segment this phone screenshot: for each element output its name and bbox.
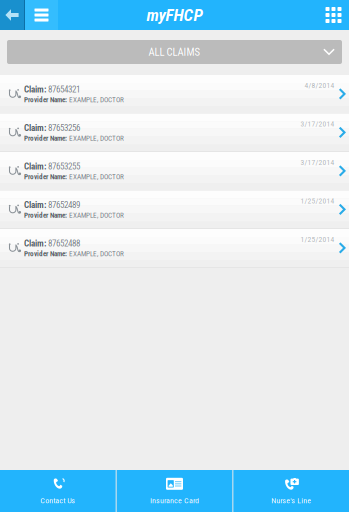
staticText: 1/25/2014 — [300, 196, 334, 205]
staticText: 87652488 — [48, 238, 80, 249]
button[interactable]: Menu — [25, 0, 58, 30]
staticText: EXAMPLE, DOCTOR — [69, 96, 124, 104]
staticText: Provider Name: — [24, 134, 67, 142]
staticText: Claim: — [24, 122, 46, 133]
button[interactable]: Claim: — [0, 229, 349, 267]
staticText: Nurse's Line — [271, 496, 311, 505]
staticText: Insurance Card — [150, 496, 199, 505]
staticText: Claim: — [24, 199, 46, 210]
staticText: Provider Name: — [24, 96, 67, 104]
button[interactable]: Claim: — [0, 152, 349, 190]
staticText: 87653256 — [48, 122, 80, 133]
staticText: 87654321 — [48, 84, 80, 95]
staticText: ALL CLAIMS — [148, 46, 200, 58]
button[interactable]: Claim: — [0, 113, 349, 151]
staticText: Claim: — [24, 84, 46, 95]
button[interactable]: Nurse's Line — [233, 470, 349, 512]
staticText: Provider Name: — [24, 173, 67, 181]
staticText: EXAMPLE, DOCTOR — [69, 134, 124, 142]
button[interactable]: Claim: — [0, 75, 349, 113]
staticText: Claim: — [24, 238, 46, 249]
button[interactable]: ALL CLAIMS — [7, 40, 342, 64]
staticText: 3/17/2014 — [300, 158, 334, 167]
staticText: 4/8/2014 — [304, 81, 334, 90]
staticText: 87653255 — [48, 161, 80, 172]
staticText: 3/17/2014 — [300, 119, 334, 128]
button[interactable]: Apps — [318, 0, 349, 30]
staticText: EXAMPLE, DOCTOR — [69, 211, 124, 219]
staticText: Provider Name: — [24, 250, 67, 258]
staticText: 1/25/2014 — [300, 235, 334, 244]
button[interactable]: Back — [0, 0, 24, 30]
staticText: Provider Name: — [24, 211, 67, 219]
staticText: 87652489 — [48, 199, 80, 210]
staticText: EXAMPLE, DOCTOR — [69, 173, 124, 181]
button[interactable]: Contact Us — [0, 470, 116, 512]
button[interactable]: Insurance Card — [117, 470, 232, 512]
staticText: myFHCP — [146, 5, 202, 25]
button[interactable]: Claim: — [0, 190, 349, 228]
staticText: Contact Us — [40, 496, 75, 505]
staticText: Claim: — [24, 161, 46, 172]
staticText: EXAMPLE, DOCTOR — [69, 250, 124, 258]
